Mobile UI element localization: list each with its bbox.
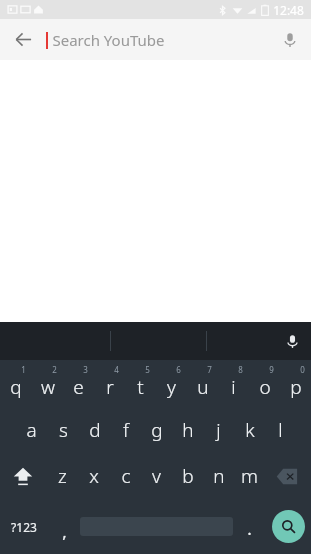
- staticText: a: [26, 417, 37, 443]
- button[interactable]: 3: [63, 360, 94, 407]
- staticText: 6: [176, 364, 181, 375]
- staticText: o: [259, 374, 271, 400]
- staticText: 2: [52, 364, 57, 375]
- staticText: f: [123, 417, 129, 443]
- staticText: e: [73, 374, 84, 400]
- staticText: x: [89, 463, 99, 489]
- staticText: q: [10, 374, 22, 400]
- button[interactable]: .: [233, 499, 265, 554]
- button[interactable]: Back: [0, 19, 46, 60]
- button[interactable]: d: [79, 407, 110, 453]
- button[interactable]: Search YouTube: [46, 19, 269, 60]
- button[interactable]: 6: [156, 360, 187, 407]
- button[interactable]: a: [15, 407, 47, 453]
- button[interactable]: 9: [249, 360, 280, 407]
- button[interactable]: Voice input: [273, 322, 311, 360]
- button[interactable]: j: [203, 407, 234, 453]
- button[interactable]: s: [47, 407, 79, 453]
- button[interactable]: g: [141, 407, 172, 453]
- staticText: u: [197, 374, 209, 400]
- staticText: Search YouTube: [52, 30, 165, 50]
- staticText: j: [216, 417, 221, 443]
- button[interactable]: [80, 499, 233, 554]
- button[interactable]: n: [203, 453, 234, 499]
- staticText: s: [59, 417, 68, 443]
- button[interactable]: 7: [187, 360, 218, 407]
- staticText: ?123: [11, 519, 37, 535]
- button[interactable]: Backspace: [265, 453, 311, 499]
- button[interactable]: 5: [125, 360, 156, 407]
- button[interactable]: z: [46, 453, 78, 499]
- button[interactable]: 8: [218, 360, 249, 407]
- staticText: 1: [21, 364, 26, 375]
- button[interactable]: 4: [94, 360, 125, 407]
- button[interactable]: c: [110, 453, 141, 499]
- button[interactable]: Search: [265, 499, 311, 554]
- staticText: y: [167, 374, 176, 400]
- button[interactable]: h: [172, 407, 203, 453]
- staticText: 4: [114, 364, 119, 375]
- button[interactable]: x: [78, 453, 110, 499]
- button[interactable]: f: [110, 407, 141, 453]
- staticText: h: [182, 417, 194, 443]
- staticText: g: [151, 417, 163, 443]
- staticText: 7: [207, 364, 212, 375]
- button[interactable]: k: [234, 407, 265, 453]
- staticText: k: [245, 417, 255, 443]
- staticText: c: [121, 463, 131, 489]
- staticText: t: [137, 374, 144, 400]
- button[interactable]: ,: [48, 499, 80, 554]
- staticText: z: [58, 463, 67, 489]
- staticText: 3: [83, 364, 88, 375]
- staticText: d: [89, 417, 101, 443]
- button[interactable]: Shift: [0, 453, 46, 499]
- staticText: 12:48: [273, 2, 304, 18]
- button[interactable]: l: [265, 407, 296, 453]
- button[interactable]: 1: [0, 360, 32, 407]
- button[interactable]: Voice search: [269, 19, 311, 60]
- staticText: 8: [238, 364, 243, 375]
- staticText: p: [290, 374, 302, 400]
- staticText: ,: [62, 520, 67, 543]
- staticText: m: [241, 463, 258, 489]
- staticText: w: [41, 374, 55, 400]
- staticText: r: [106, 374, 114, 400]
- button[interactable]: 0: [280, 360, 311, 407]
- staticText: l: [278, 417, 283, 443]
- button[interactable]: v: [141, 453, 172, 499]
- staticText: 0: [300, 364, 305, 375]
- button[interactable]: b: [172, 453, 203, 499]
- staticText: i: [231, 374, 236, 400]
- staticText: v: [152, 463, 161, 489]
- button[interactable]: m: [234, 453, 265, 499]
- staticText: .: [247, 517, 252, 540]
- staticText: 9: [269, 364, 274, 375]
- staticText: n: [213, 463, 225, 489]
- staticText: b: [182, 463, 194, 489]
- button[interactable]: ?123: [0, 499, 48, 554]
- staticText: 5: [145, 364, 150, 375]
- button[interactable]: 2: [32, 360, 63, 407]
